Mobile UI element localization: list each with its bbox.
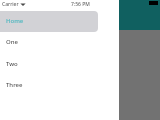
- staticText: Home: [6, 17, 24, 25]
- staticText: Carrier: [2, 1, 19, 8]
- button[interactable]: One: [0, 32, 98, 53]
- staticText: One: [6, 38, 18, 46]
- button[interactable]: Three: [0, 75, 98, 96]
- button[interactable]: Two: [0, 54, 98, 75]
- staticText: Two: [6, 60, 18, 68]
- staticText: Three: [6, 81, 23, 89]
- button[interactable]: Home: [0, 11, 98, 32]
- staticText: 7:56 PM: [71, 1, 90, 8]
